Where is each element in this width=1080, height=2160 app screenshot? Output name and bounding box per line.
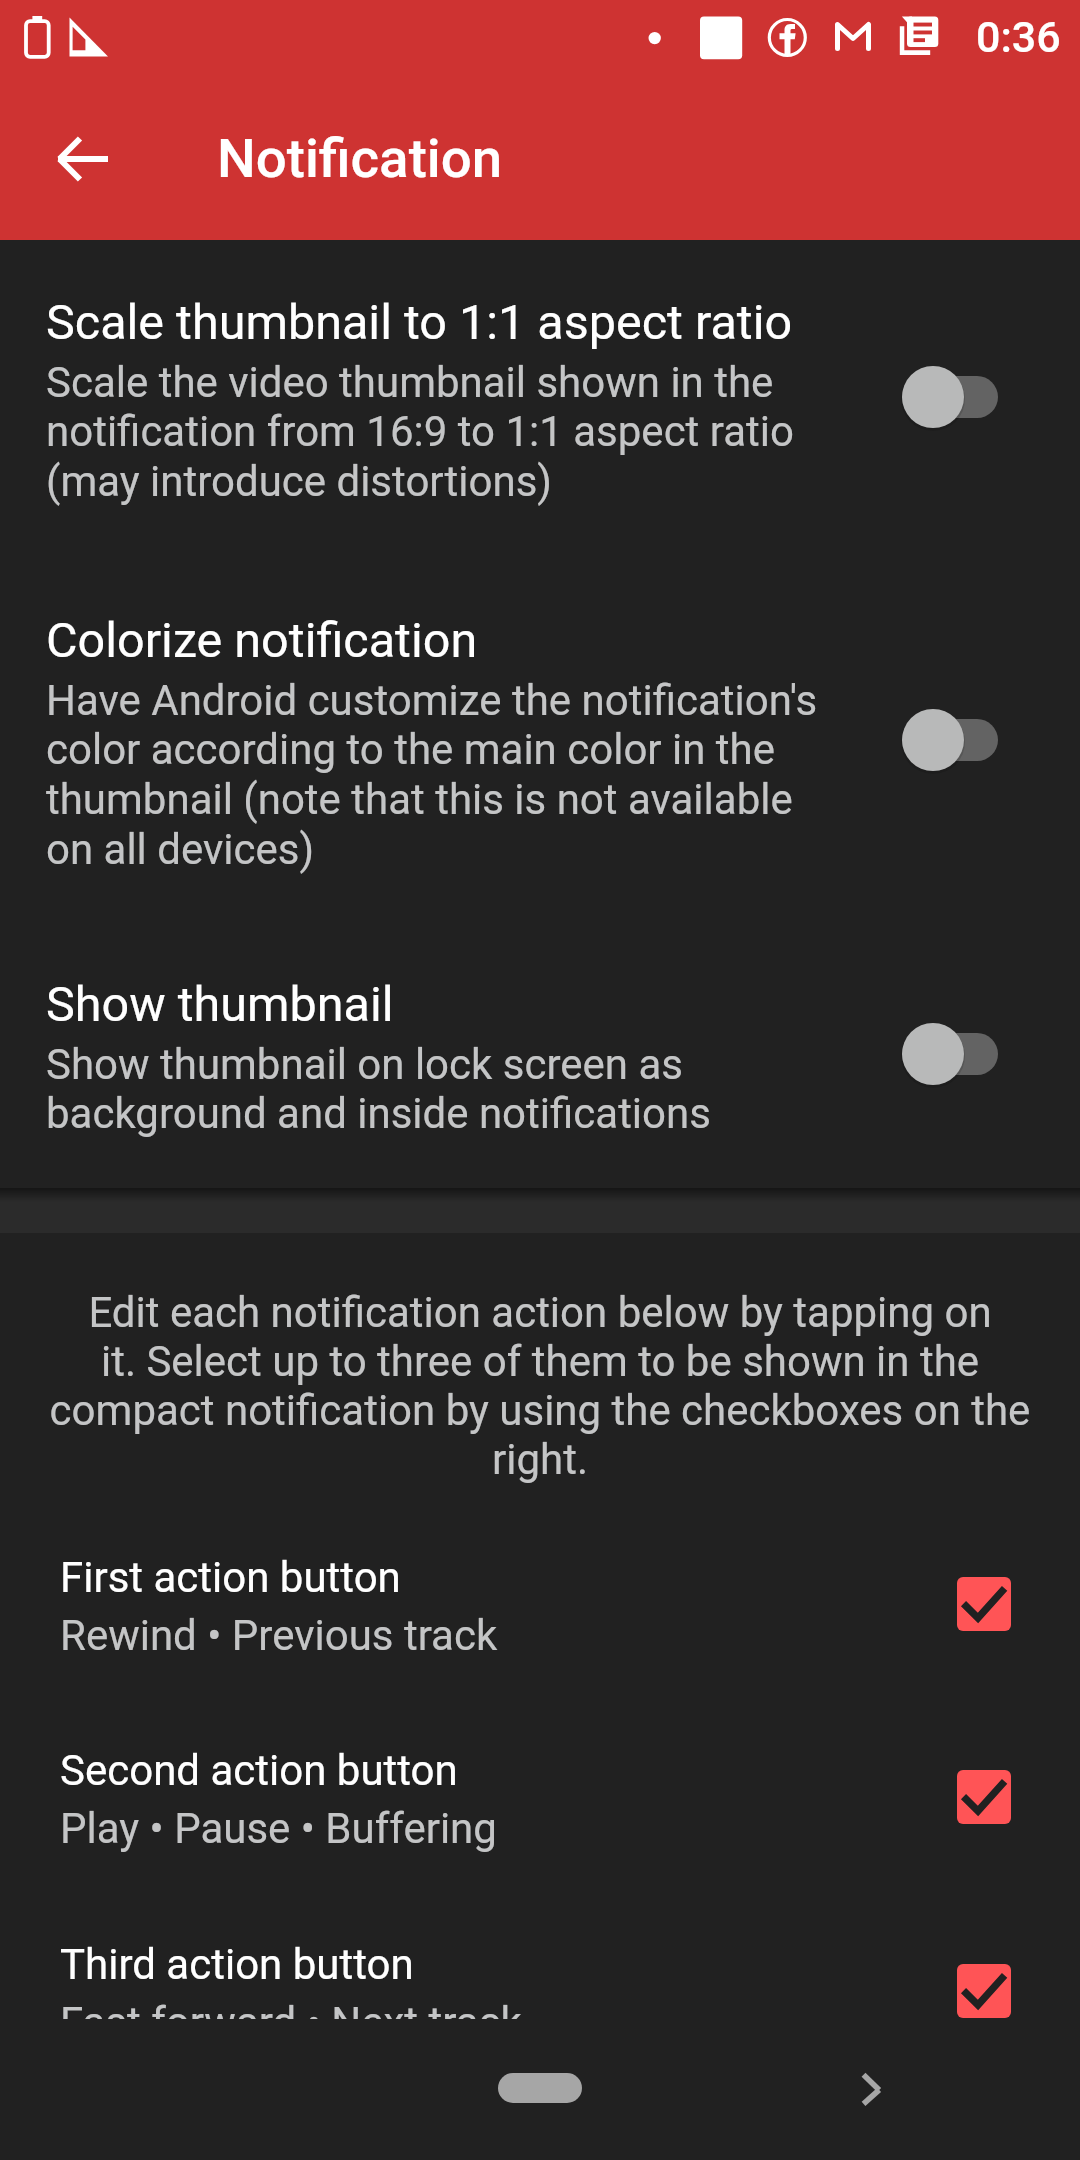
button[interactable]: First action button	[0, 1553, 1080, 1660]
button[interactable]: Scale thumbnail to 1:1 aspect ratio	[0, 240, 1080, 612]
button[interactable]: Forward	[847, 2068, 897, 2118]
button[interactable]: Colorize notification	[0, 612, 1080, 976]
staticText: Have Android customize the notification'…	[46, 676, 836, 874]
staticText: Rewind • Previous track	[60, 1611, 498, 1660]
button[interactable]: Show in compact notification	[957, 1770, 1011, 1824]
staticText: Scale thumbnail to 1:1 aspect ratio	[46, 294, 793, 351]
staticText: Show thumbnail	[46, 976, 394, 1033]
staticText: Scale the video thumbnail shown in the n…	[46, 358, 836, 506]
staticText: First action button	[60, 1553, 401, 1602]
button[interactable]: Home	[498, 2073, 582, 2103]
button[interactable]: Show in compact notification	[957, 1964, 1011, 2018]
staticText: Second action button	[60, 1746, 458, 1795]
button[interactable]: Second action button	[0, 1746, 1080, 1853]
staticText: Third action button	[60, 1940, 414, 1989]
button[interactable]: Show in compact notification	[957, 1577, 1011, 1631]
staticText: 0:36	[976, 12, 1061, 62]
staticText: Show thumbnail on lock screen as backgro…	[46, 1040, 836, 1138]
staticText: Fast forward • Next track	[60, 1998, 522, 2047]
staticText: Edit each notification action below by t…	[0, 1288, 1080, 1484]
staticText: Play • Pause • Buffering	[60, 1804, 497, 1853]
button[interactable]: Third action button	[0, 1940, 1080, 2047]
button[interactable]: Back	[21, 97, 145, 221]
staticText: Notification	[217, 126, 503, 190]
button[interactable]: Show thumbnail	[0, 976, 1080, 1187]
staticText: Colorize notification	[46, 612, 478, 669]
